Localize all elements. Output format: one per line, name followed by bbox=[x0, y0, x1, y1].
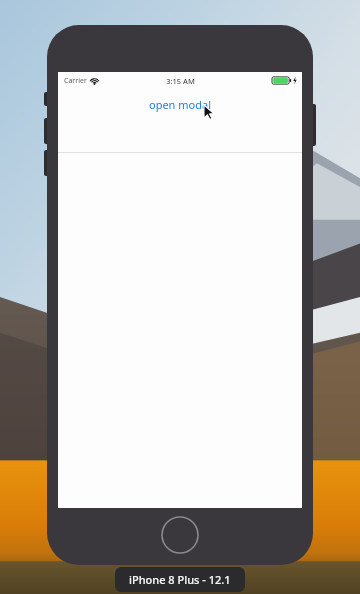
staticText: Carrier bbox=[64, 76, 87, 86]
button[interactable]: iPhone 8 Plus - 12.1 bbox=[115, 567, 245, 592]
button[interactable]: open modal bbox=[141, 95, 219, 114]
staticText: open modal bbox=[149, 97, 211, 112]
staticText: 3:15 AM bbox=[166, 76, 195, 86]
other: Home bbox=[160, 515, 200, 555]
staticText: iPhone 8 Plus - 12.1 bbox=[129, 572, 231, 587]
